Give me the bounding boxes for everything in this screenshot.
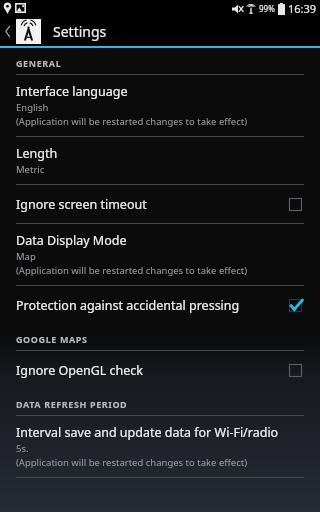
button[interactable]: Ignore OpenGL check xyxy=(0,351,320,389)
staticText: 5s. xyxy=(16,442,29,455)
staticText: English xyxy=(16,101,49,114)
button[interactable]: Protection against accidental pressing xyxy=(0,286,320,324)
staticText: Data Display Mode xyxy=(16,232,127,249)
button[interactable]: Navigate up xyxy=(0,16,43,46)
staticText: Interface language xyxy=(16,83,128,100)
button[interactable]: Ignore screen timeout xyxy=(0,185,320,223)
staticText: Ignore screen timeout xyxy=(16,196,147,213)
staticText: Ignore OpenGL check xyxy=(16,362,144,379)
staticText: Length xyxy=(16,145,58,162)
button[interactable]: Checked xyxy=(284,294,306,316)
staticText: Metric xyxy=(16,163,45,176)
staticText: 99% xyxy=(259,3,275,14)
staticText: (Application will be restarted changes t… xyxy=(16,115,248,128)
button[interactable]: Length xyxy=(0,137,320,184)
button[interactable]: Interface language xyxy=(0,75,320,136)
staticText: GOOGLE MAPS xyxy=(16,333,88,345)
staticText: (Application will be restarted changes t… xyxy=(16,264,248,277)
staticText: DATA REFRESH PERIOD xyxy=(16,398,128,410)
staticText: 16:39 xyxy=(288,1,317,16)
staticText: Interval save and update data for Wi-Fi/… xyxy=(16,424,279,441)
button[interactable]: Interval save and update data for Wi-Fi/… xyxy=(0,416,320,477)
staticText: Settings xyxy=(53,22,107,41)
button[interactable]: Data Display Mode xyxy=(0,224,320,285)
staticText: Map xyxy=(16,250,36,263)
button[interactable]: Unchecked xyxy=(284,193,306,215)
staticText: (Application will be restarted changes t… xyxy=(16,456,248,469)
staticText: GENERAL xyxy=(16,57,62,69)
staticText: Protection against accidental pressing xyxy=(16,297,240,314)
button[interactable]: Unchecked xyxy=(284,359,306,381)
